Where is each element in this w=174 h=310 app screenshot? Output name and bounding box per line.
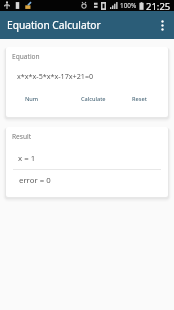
staticText: 100% [120,1,137,10]
staticText: x*x*x-5*x*x-17x+21=0 [17,71,94,81]
staticText: 21:25 [146,0,171,11]
staticText: Reset [132,95,147,103]
button[interactable]: More options [153,16,171,34]
button[interactable]: Calculate [78,93,109,105]
staticText: Num [25,95,39,103]
staticText: Equation Calculator [7,18,101,32]
button[interactable]: Reset [129,93,150,105]
staticText: x = 1 [18,153,36,164]
staticText: error = 0 [19,175,51,186]
staticText: Result [12,132,32,141]
staticText: Calculate [81,95,106,103]
button[interactable]: Num [22,93,42,105]
staticText: Equation [12,52,40,61]
